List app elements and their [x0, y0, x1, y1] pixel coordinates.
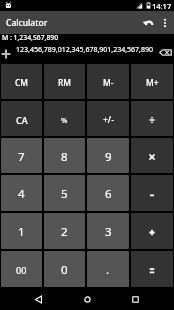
button[interactable]: CM — [1, 64, 42, 99]
staticText: 2 — [61, 224, 68, 240]
button[interactable]: 5 — [44, 175, 85, 211]
button[interactable]: Undo — [137, 12, 159, 34]
staticText: 4 — [18, 186, 25, 202]
button[interactable]: Home — [72, 288, 102, 310]
staticText: 0 — [61, 262, 68, 278]
staticText: 1 — [18, 224, 25, 240]
staticText: M+ — [146, 77, 159, 88]
button[interactable]: 1 — [1, 213, 42, 249]
staticText: 3 — [105, 224, 112, 240]
button[interactable]: 8 — [44, 138, 85, 173]
button[interactable]: Back — [23, 288, 53, 310]
staticText: Calculator — [6, 17, 48, 29]
button[interactable]: M+ — [131, 64, 173, 99]
staticText: 5 — [61, 186, 68, 202]
button[interactable]: 2 — [44, 213, 85, 249]
button[interactable]: Recent apps — [120, 288, 150, 310]
button[interactable]: +/- — [87, 101, 129, 136]
button[interactable]: Backspace — [158, 47, 173, 57]
button[interactable]: 3 — [87, 213, 129, 249]
button[interactable]: 00 — [1, 251, 42, 287]
button[interactable]: Multiply — [131, 138, 173, 173]
button[interactable]: Equals — [131, 251, 173, 287]
staticText: RM — [58, 77, 72, 88]
button[interactable]: M- — [87, 64, 129, 99]
staticText: CA — [16, 114, 28, 126]
staticText: 6 — [105, 186, 112, 202]
staticText: % — [61, 115, 68, 125]
staticText: 14:17 — [152, 1, 172, 11]
staticText: . — [106, 262, 110, 278]
button[interactable]: . — [87, 251, 129, 287]
button[interactable]: Minus — [131, 175, 173, 211]
button[interactable]: More options — [155, 12, 174, 34]
staticText: CM — [15, 77, 29, 88]
staticText: +/- — [103, 114, 114, 126]
button[interactable]: 7 — [1, 138, 42, 173]
button[interactable]: Divide — [131, 101, 173, 136]
staticText: 9 — [105, 149, 112, 165]
staticText: 8 — [61, 149, 68, 165]
button[interactable]: 0 — [44, 251, 85, 287]
staticText: M : 1,234,567,890 — [2, 33, 59, 42]
button[interactable]: 4 — [1, 175, 42, 211]
staticText: M- — [103, 77, 114, 88]
button[interactable]: 9 — [87, 138, 129, 173]
button[interactable]: Plus — [131, 213, 173, 249]
button[interactable]: RM — [44, 64, 85, 99]
staticText: 7 — [18, 149, 25, 165]
staticText: 00 — [16, 264, 27, 276]
staticText: 123,456,789,012,345,678,901,234,567,890 — [16, 45, 154, 55]
button[interactable]: 6 — [87, 175, 129, 211]
button[interactable]: CA — [1, 101, 42, 136]
button[interactable]: % — [44, 101, 85, 136]
